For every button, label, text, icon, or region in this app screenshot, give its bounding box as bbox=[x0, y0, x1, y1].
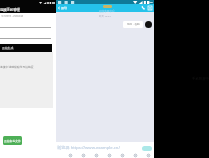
button[interactable]: Tool bbox=[133, 153, 137, 157]
staticText: 微信 bbox=[61, 6, 68, 10]
staticText: 浏览器 https://www.example.cn/ bbox=[57, 145, 120, 151]
button[interactable]: Tool bbox=[81, 153, 85, 157]
staticText: 正在生成 bbox=[2, 46, 14, 50]
staticText: 你好，在吗 bbox=[127, 23, 140, 26]
staticText: 昨天 10:24 bbox=[99, 14, 111, 17]
button[interactable]: Back bbox=[57, 4, 68, 12]
staticText: 正在备份文件 bbox=[4, 139, 21, 143]
button[interactable]: Send bbox=[142, 146, 152, 151]
button[interactable]: More options bbox=[147, 5, 153, 11]
staticText: 文件管理 › 内部存储 bbox=[1, 14, 24, 17]
staticText: 连接手机管理 bbox=[0, 8, 20, 12]
button[interactable]: Tool bbox=[107, 153, 111, 157]
staticText: 11:05 bbox=[147, 1, 153, 4]
button[interactable]: 你好，在吗 bbox=[123, 21, 143, 28]
staticText: 手机投屏中 bbox=[192, 77, 209, 81]
staticText: 在线客服中心 bbox=[99, 9, 115, 12]
button[interactable]: Tool bbox=[120, 153, 124, 157]
staticText: 连接中请稍候程序无法响应 bbox=[0, 65, 34, 69]
button[interactable]: Tool bbox=[68, 153, 72, 157]
button[interactable]: Tool bbox=[94, 153, 98, 157]
button[interactable]: Tool bbox=[146, 153, 150, 157]
button[interactable]: Call bbox=[140, 5, 146, 11]
button[interactable]: 正在备份文件 bbox=[3, 136, 22, 145]
